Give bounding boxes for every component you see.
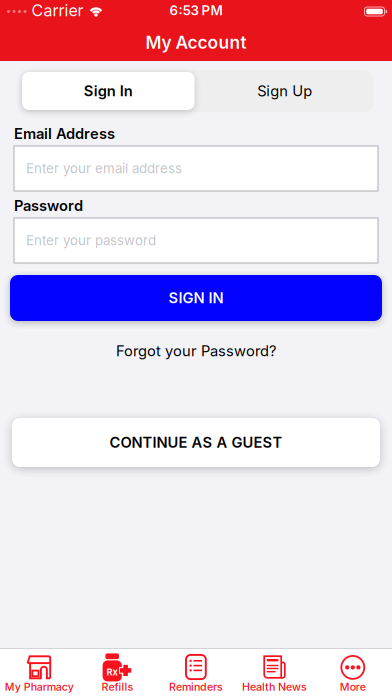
staticText: Enter your password: [26, 233, 156, 248]
staticText: Carrier: [31, 1, 83, 20]
button[interactable]: My Pharmacy: [0, 649, 78, 695]
button[interactable]: Health News: [235, 649, 314, 695]
staticText: More: [340, 681, 366, 693]
button[interactable]: Sign Up: [198, 72, 371, 110]
staticText: Sign Up: [257, 82, 312, 100]
button[interactable]: Rx: [78, 649, 157, 695]
button[interactable]: Enter your email address: [14, 146, 378, 191]
staticText: My Account: [145, 32, 246, 53]
staticText: CONTINUE AS A GUEST: [109, 434, 282, 451]
staticText: Forgot your Password?: [116, 342, 276, 360]
staticText: Email Address: [14, 125, 115, 142]
staticText: 6:53 PM: [169, 3, 222, 18]
button[interactable]: Sign In: [22, 72, 194, 110]
button[interactable]: More: [314, 649, 392, 695]
button[interactable]: CONTINUE AS A GUEST: [12, 418, 380, 467]
button[interactable]: SIGN IN: [10, 275, 382, 321]
button[interactable]: Reminders: [157, 649, 235, 695]
staticText: Rx: [106, 667, 117, 678]
staticText: Sign In: [84, 82, 133, 100]
staticText: Reminders: [169, 681, 223, 693]
staticText: My Pharmacy: [5, 681, 74, 693]
button[interactable]: Enter your password: [14, 218, 378, 263]
staticText: Enter your email address: [26, 161, 182, 176]
staticText: Refills: [102, 681, 134, 693]
staticText: Password: [14, 197, 83, 214]
staticText: SIGN IN: [168, 289, 223, 307]
button[interactable]: Forgot your Password?: [0, 340, 392, 362]
staticText: Health News: [242, 681, 307, 693]
